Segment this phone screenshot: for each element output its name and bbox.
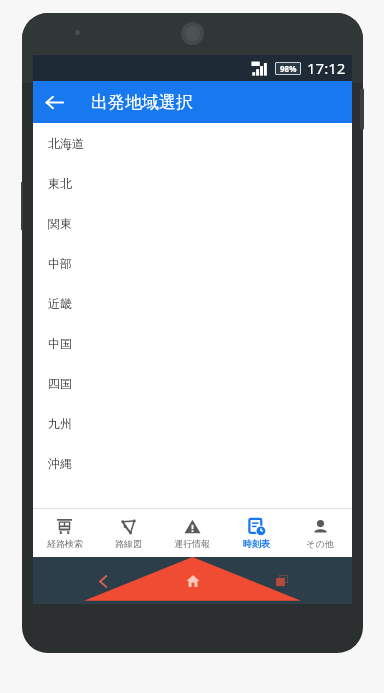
button[interactable]: 時刻表 — [224, 509, 288, 557]
staticText: 九州 — [48, 416, 72, 431]
staticText: 東北 — [48, 176, 72, 191]
button[interactable]: Back — [83, 561, 123, 601]
staticText: 四国 — [48, 376, 72, 391]
staticText: 出発地域選択 — [91, 92, 193, 113]
staticText: 98% — [280, 63, 297, 74]
staticText: 経路検索 — [47, 538, 83, 549]
staticText: 中国 — [48, 336, 72, 351]
staticText: 路線図 — [115, 538, 142, 549]
button[interactable]: 運行情報 — [160, 509, 224, 557]
button[interactable]: 沖縄 — [33, 443, 352, 483]
button[interactable]: 四国 — [33, 363, 352, 403]
staticText: 時刻表 — [243, 538, 270, 549]
button[interactable]: Back — [33, 81, 75, 123]
button[interactable]: Home — [173, 561, 213, 601]
button[interactable]: 関東 — [33, 203, 352, 243]
button[interactable]: Recent apps — [262, 561, 302, 601]
button[interactable]: 近畿 — [33, 283, 352, 323]
staticText: 北海道 — [48, 136, 84, 151]
staticText: 近畿 — [48, 296, 72, 311]
button[interactable]: その他 — [288, 509, 352, 557]
button[interactable]: 経路検索 — [33, 509, 96, 557]
button[interactable]: 九州 — [33, 403, 352, 443]
button[interactable]: 東北 — [33, 163, 352, 203]
button[interactable]: 中部 — [33, 243, 352, 283]
staticText: 沖縄 — [48, 456, 72, 471]
staticText: 中部 — [48, 256, 72, 271]
button[interactable]: 北海道 — [33, 123, 352, 163]
staticText: その他 — [306, 538, 334, 549]
button[interactable]: 路線図 — [96, 509, 160, 557]
staticText: 17:12 — [307, 58, 346, 78]
button[interactable]: 中国 — [33, 323, 352, 363]
staticText: 運行情報 — [174, 538, 210, 549]
staticText: 関東 — [48, 216, 72, 231]
